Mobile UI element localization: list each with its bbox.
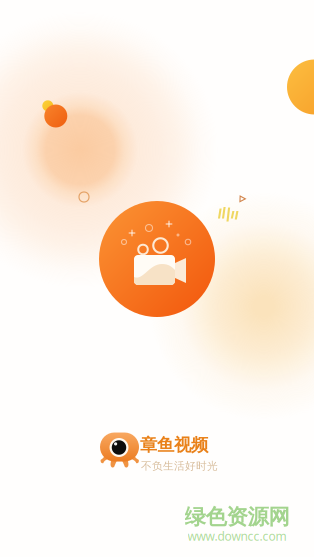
staticText: 不负生活好时光: [141, 459, 218, 472]
staticText: 章鱼视频: [140, 434, 208, 456]
staticText: www.downcc.com: [187, 528, 286, 544]
staticText: 绿色资源网: [184, 504, 289, 530]
